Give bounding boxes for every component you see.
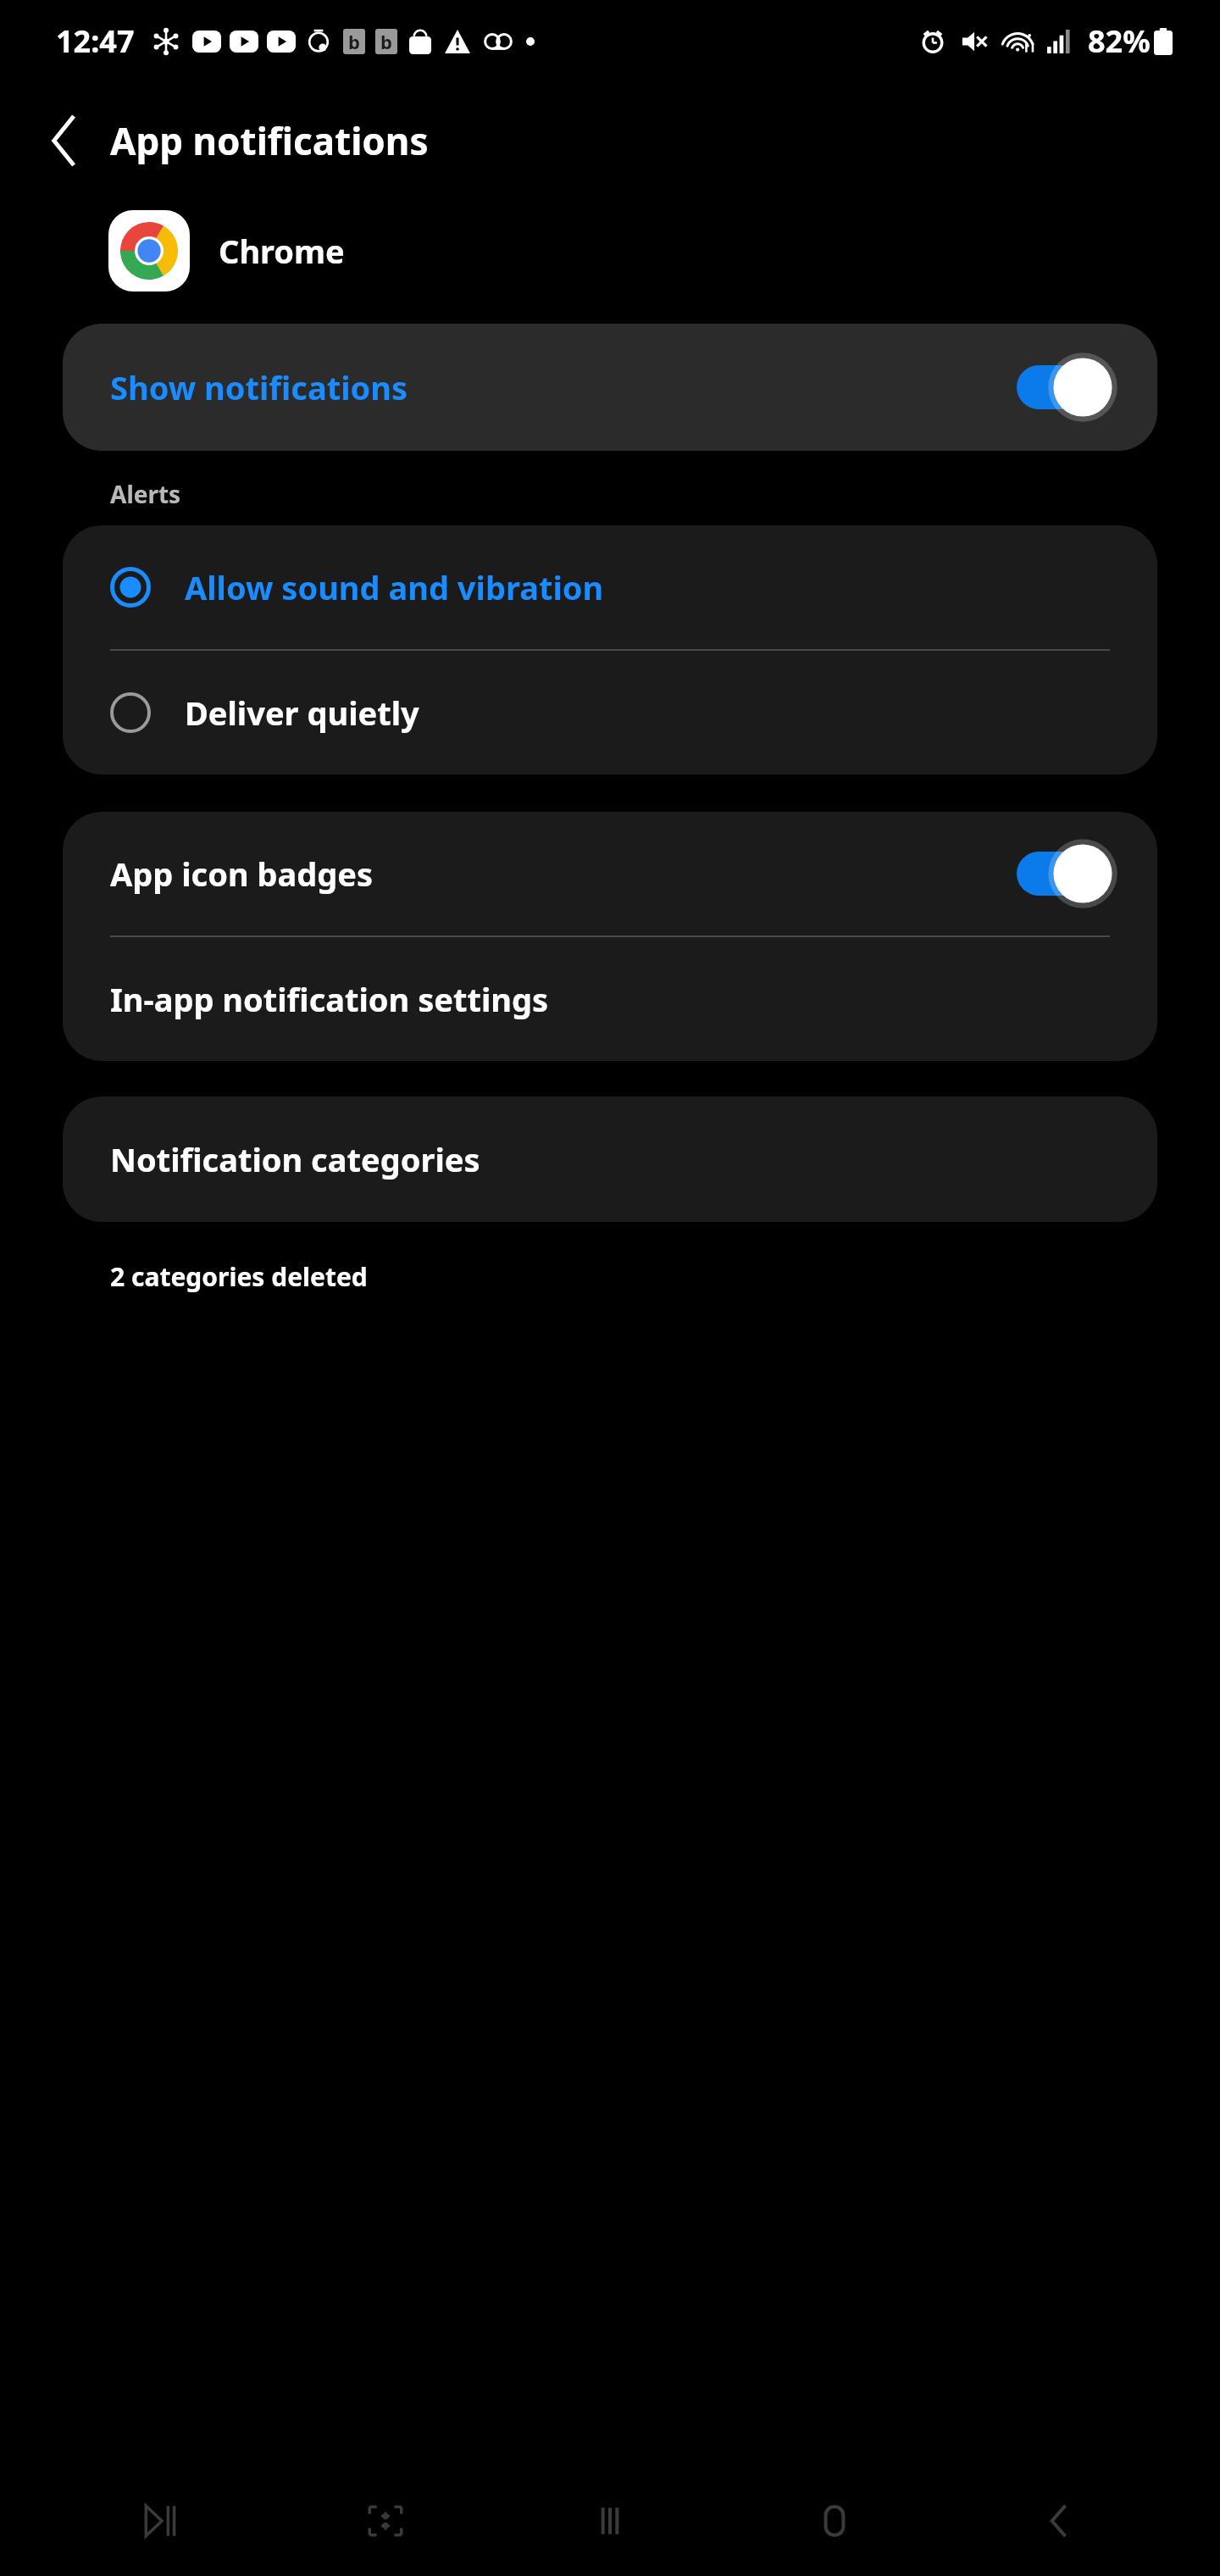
button[interactable]: Recents: [546, 2474, 674, 2568]
staticText: b: [348, 29, 360, 54]
button[interactable]: Toggle: [1017, 843, 1120, 904]
button[interactable]: Back: [30, 107, 98, 175]
button[interactable]: Allow sound and vibration: [63, 525, 1157, 649]
staticText: Allow sound and vibration: [185, 565, 604, 609]
staticText: 2 categories deleted: [110, 1259, 368, 1294]
staticText: Deliver quietly: [185, 691, 419, 735]
button[interactable]: In-app notification settings: [63, 937, 1157, 1061]
staticText: Show notifications: [110, 365, 408, 409]
button[interactable]: Screenshot: [322, 2474, 449, 2568]
staticText: Alerts: [110, 478, 181, 510]
staticText: Chrome: [219, 229, 345, 273]
button[interactable]: Home: [771, 2474, 898, 2568]
button[interactable]: Deliver quietly: [63, 651, 1157, 774]
staticText: 12:47: [56, 20, 135, 62]
button[interactable]: Notification categories: [63, 1096, 1157, 1222]
button[interactable]: App icon badges: [63, 812, 1157, 935]
staticText: Notification categories: [110, 1137, 480, 1181]
staticText: App notifications: [110, 115, 429, 166]
button[interactable]: Play pause: [97, 2474, 225, 2568]
staticText: In-app notification settings: [110, 977, 549, 1021]
button[interactable]: Show notifications: [63, 324, 1157, 451]
staticText: b: [380, 29, 392, 54]
button[interactable]: Toggle: [1017, 357, 1120, 418]
staticText: 82%: [1088, 20, 1151, 62]
staticText: App icon badges: [110, 852, 374, 896]
button[interactable]: Back: [995, 2474, 1123, 2568]
